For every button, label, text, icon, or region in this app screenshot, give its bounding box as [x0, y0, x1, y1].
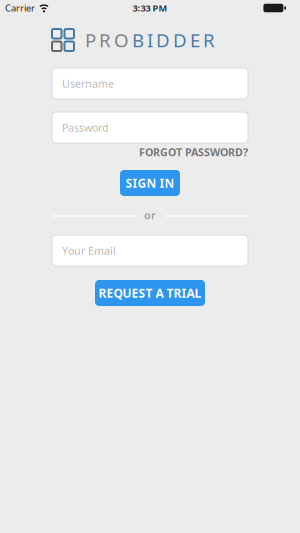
staticText: D	[156, 28, 170, 52]
staticText: R	[99, 28, 111, 52]
staticText: Your Email	[62, 243, 116, 258]
staticText: P	[85, 28, 96, 52]
staticText: FORGOT PASSWORD?	[139, 145, 248, 159]
staticText: D	[173, 28, 187, 52]
button[interactable]: REQUEST A TRIAL	[95, 280, 205, 306]
staticText: R	[203, 28, 215, 52]
staticText: I	[147, 28, 153, 52]
staticText: B	[132, 28, 144, 52]
staticText: 3:33 PM	[132, 2, 167, 14]
button[interactable]: Username	[52, 68, 248, 99]
staticText: or	[144, 208, 156, 222]
staticText: Username	[62, 76, 114, 91]
staticText: O	[114, 28, 129, 52]
button[interactable]: Your Email	[52, 235, 248, 266]
staticText: Password	[62, 120, 109, 135]
staticText: Carrier	[5, 2, 35, 14]
button[interactable]: SIGN IN	[120, 170, 180, 196]
staticText: SIGN IN	[125, 175, 174, 191]
staticText: REQUEST A TRIAL	[98, 285, 201, 301]
button[interactable]: FORGOT PASSWORD?	[139, 145, 248, 159]
staticText: E	[190, 28, 200, 52]
button[interactable]: Password	[52, 112, 248, 143]
